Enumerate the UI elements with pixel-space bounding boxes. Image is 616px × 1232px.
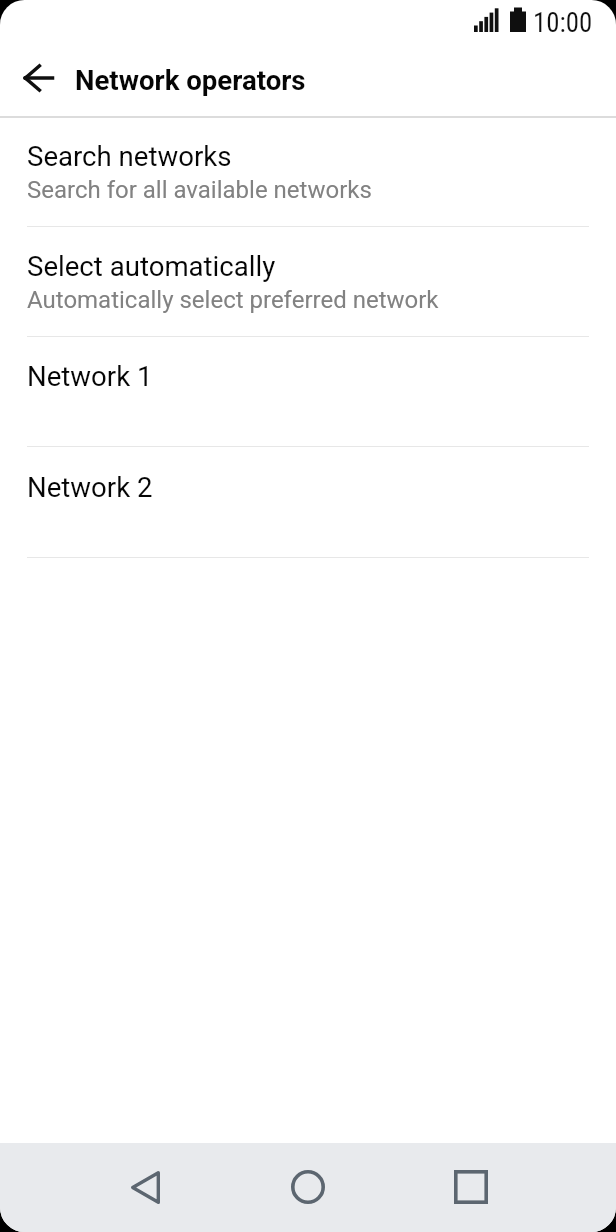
- button[interactable]: Home: [271, 1150, 345, 1224]
- staticText: Network 1: [27, 360, 153, 392]
- button[interactable]: Search networks: [0, 117, 616, 227]
- button[interactable]: Network 1: [0, 337, 616, 447]
- button[interactable]: Network 2: [0, 448, 616, 558]
- staticText: Network 2: [27, 471, 153, 503]
- staticText: Automatically select preferred network: [27, 286, 439, 314]
- staticText: Network operators: [75, 64, 306, 96]
- staticText: 10:00: [533, 7, 593, 38]
- button[interactable]: Recent apps: [434, 1150, 508, 1224]
- button[interactable]: Back: [108, 1150, 182, 1224]
- staticText: Search for all available networks: [27, 176, 372, 204]
- button[interactable]: Back: [10, 50, 66, 106]
- staticText: Select automatically: [27, 250, 276, 282]
- button[interactable]: Select automatically: [0, 227, 616, 337]
- staticText: Search networks: [27, 140, 232, 172]
